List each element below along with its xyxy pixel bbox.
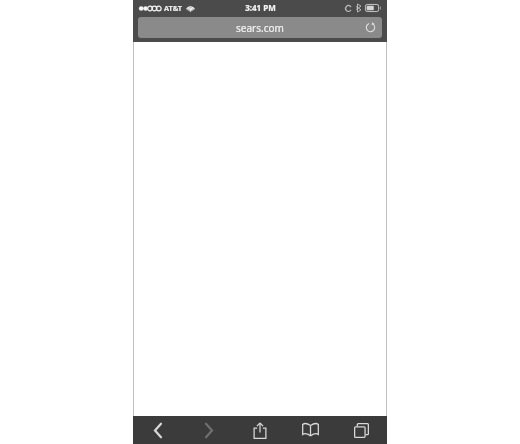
staticText: sears.com: [236, 21, 284, 35]
button[interactable]: Back: [133, 416, 183, 444]
button[interactable]: Share: [234, 416, 285, 444]
staticText: AT&T: [164, 3, 183, 13]
button[interactable]: Reload: [364, 21, 377, 34]
staticText: 3:41 PM: [245, 2, 276, 13]
button[interactable]: Tabs: [336, 416, 387, 444]
button[interactable]: Forward: [183, 416, 234, 444]
button[interactable]: sears.com: [138, 17, 382, 38]
button[interactable]: Bookmarks: [285, 416, 336, 444]
